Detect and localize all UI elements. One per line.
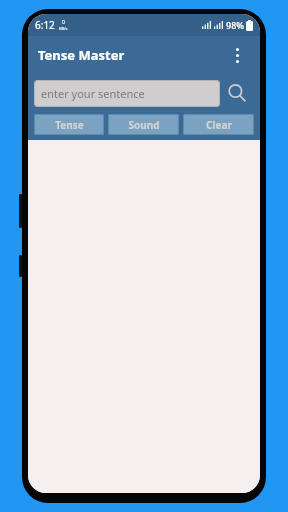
staticText: Tense [55, 118, 84, 132]
button[interactable]: Clear [183, 114, 254, 135]
button[interactable]: Sound [108, 114, 179, 135]
staticText: 6:12 [35, 18, 55, 32]
button[interactable]: Tense [34, 114, 104, 135]
staticText: Clear [206, 118, 232, 132]
staticText: KB/s [59, 26, 68, 31]
button[interactable]: enter your sentence [34, 80, 220, 107]
button[interactable]: Search [220, 78, 254, 108]
staticText: 0 [62, 19, 65, 26]
staticText: Sound [128, 118, 160, 132]
button[interactable]: More options [224, 42, 250, 68]
staticText: 98% [226, 19, 244, 31]
staticText: enter your sentence [41, 86, 145, 101]
staticText: Tense Master [38, 46, 125, 64]
